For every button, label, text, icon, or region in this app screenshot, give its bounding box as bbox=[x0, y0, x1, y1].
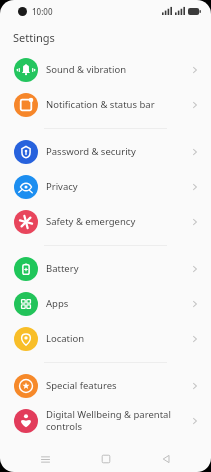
button[interactable]: Special features bbox=[0, 368, 211, 403]
staticText: Safety & emergency bbox=[46, 215, 185, 228]
button[interactable]: Back bbox=[151, 446, 181, 472]
button[interactable]: Safety & emergency bbox=[0, 204, 211, 239]
staticText: Digital Wellbeing & parental controls bbox=[46, 408, 185, 433]
staticText: Privacy bbox=[46, 180, 185, 193]
staticText: Battery bbox=[46, 262, 185, 275]
staticText: Notification & status bar bbox=[46, 98, 185, 111]
staticText: Password & security bbox=[46, 145, 185, 158]
staticText: 10:00 bbox=[32, 6, 53, 17]
button[interactable]: Recents bbox=[30, 446, 60, 472]
staticText: Sound & vibration bbox=[46, 63, 185, 76]
staticText: Special features bbox=[46, 379, 185, 392]
button[interactable]: Privacy bbox=[0, 169, 211, 204]
staticText: Settings bbox=[13, 30, 55, 45]
button[interactable]: Notification & status bar bbox=[0, 87, 211, 122]
button[interactable]: Apps bbox=[0, 286, 211, 321]
button[interactable]: Battery bbox=[0, 251, 211, 286]
button[interactable]: Digital Wellbeing & parental controls bbox=[0, 403, 211, 438]
button[interactable]: Sound & vibration bbox=[0, 52, 211, 87]
staticText: Location bbox=[46, 332, 185, 345]
button[interactable]: Password & security bbox=[0, 134, 211, 169]
button[interactable]: Home bbox=[91, 446, 121, 472]
button[interactable]: Location bbox=[0, 321, 211, 356]
staticText: Apps bbox=[46, 297, 185, 310]
